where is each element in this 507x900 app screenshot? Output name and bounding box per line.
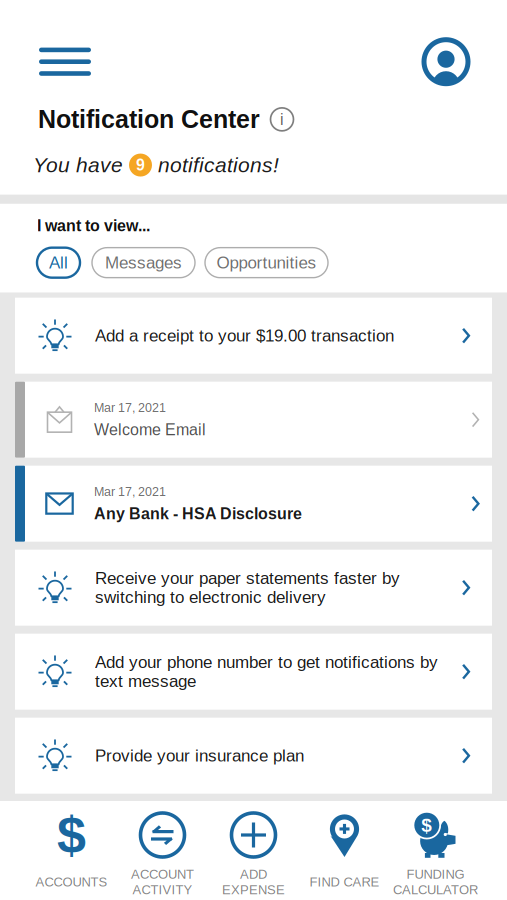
button[interactable]: Opportunities [205, 248, 328, 278]
button[interactable]: Add a receipt to your $19.00 transaction [15, 298, 492, 374]
staticText: Opportunities [216, 253, 316, 272]
staticText: You have [33, 153, 129, 177]
staticText: ACCOUNT [131, 867, 194, 881]
staticText: 9 [136, 156, 145, 174]
staticText: $ [421, 815, 432, 836]
button[interactable]: Messages [92, 248, 195, 278]
button[interactable]: Information [270, 107, 294, 131]
button[interactable]: Account Activity [117, 812, 208, 900]
staticText: $ [57, 806, 86, 864]
staticText: Provide your insurance plan [95, 746, 304, 765]
button[interactable]: Provide your insurance plan [15, 718, 492, 794]
staticText: ACTIVITY [132, 882, 192, 897]
staticText: Add a receipt to your $19.00 transaction [95, 326, 394, 345]
button[interactable]: Find Care [299, 812, 390, 900]
staticText: I want to view... [37, 217, 150, 235]
staticText: Welcome Email [94, 421, 206, 439]
staticText: EXPENSE [222, 882, 285, 897]
button[interactable]: Funding Calculator [390, 812, 481, 900]
staticText: Add your phone number to get notificatio… [95, 653, 438, 691]
staticText: Mar 17, 2021 [94, 485, 166, 499]
staticText: FUNDING [406, 867, 464, 881]
staticText: FIND CARE [309, 875, 379, 889]
staticText: Notification Center [38, 105, 260, 133]
button[interactable]: Accounts [26, 812, 117, 900]
staticText: Messages [105, 253, 182, 272]
staticText: Mar 17, 2021 [94, 401, 166, 415]
button[interactable]: Menu [35, 36, 95, 87]
button[interactable]: Mar 17, 2021 [15, 466, 492, 542]
staticText: i [280, 110, 284, 128]
button[interactable]: Mar 17, 2021 [15, 382, 492, 458]
staticText: CALCULATOR [393, 882, 478, 897]
button[interactable]: Add your phone number to get notificatio… [15, 634, 492, 710]
button[interactable]: All [37, 248, 80, 278]
staticText: Receive your paper statements faster by … [95, 569, 400, 607]
button[interactable]: Receive your paper statements faster by … [15, 550, 492, 626]
staticText: All [49, 253, 68, 272]
staticText: ACCOUNTS [35, 875, 107, 889]
staticText: ADD [240, 867, 267, 881]
button[interactable]: Profile [424, 40, 468, 84]
staticText: notifications! [152, 153, 279, 177]
staticText: Any Bank - HSA Disclosure [94, 505, 302, 523]
button[interactable]: Add Expense [208, 812, 299, 900]
